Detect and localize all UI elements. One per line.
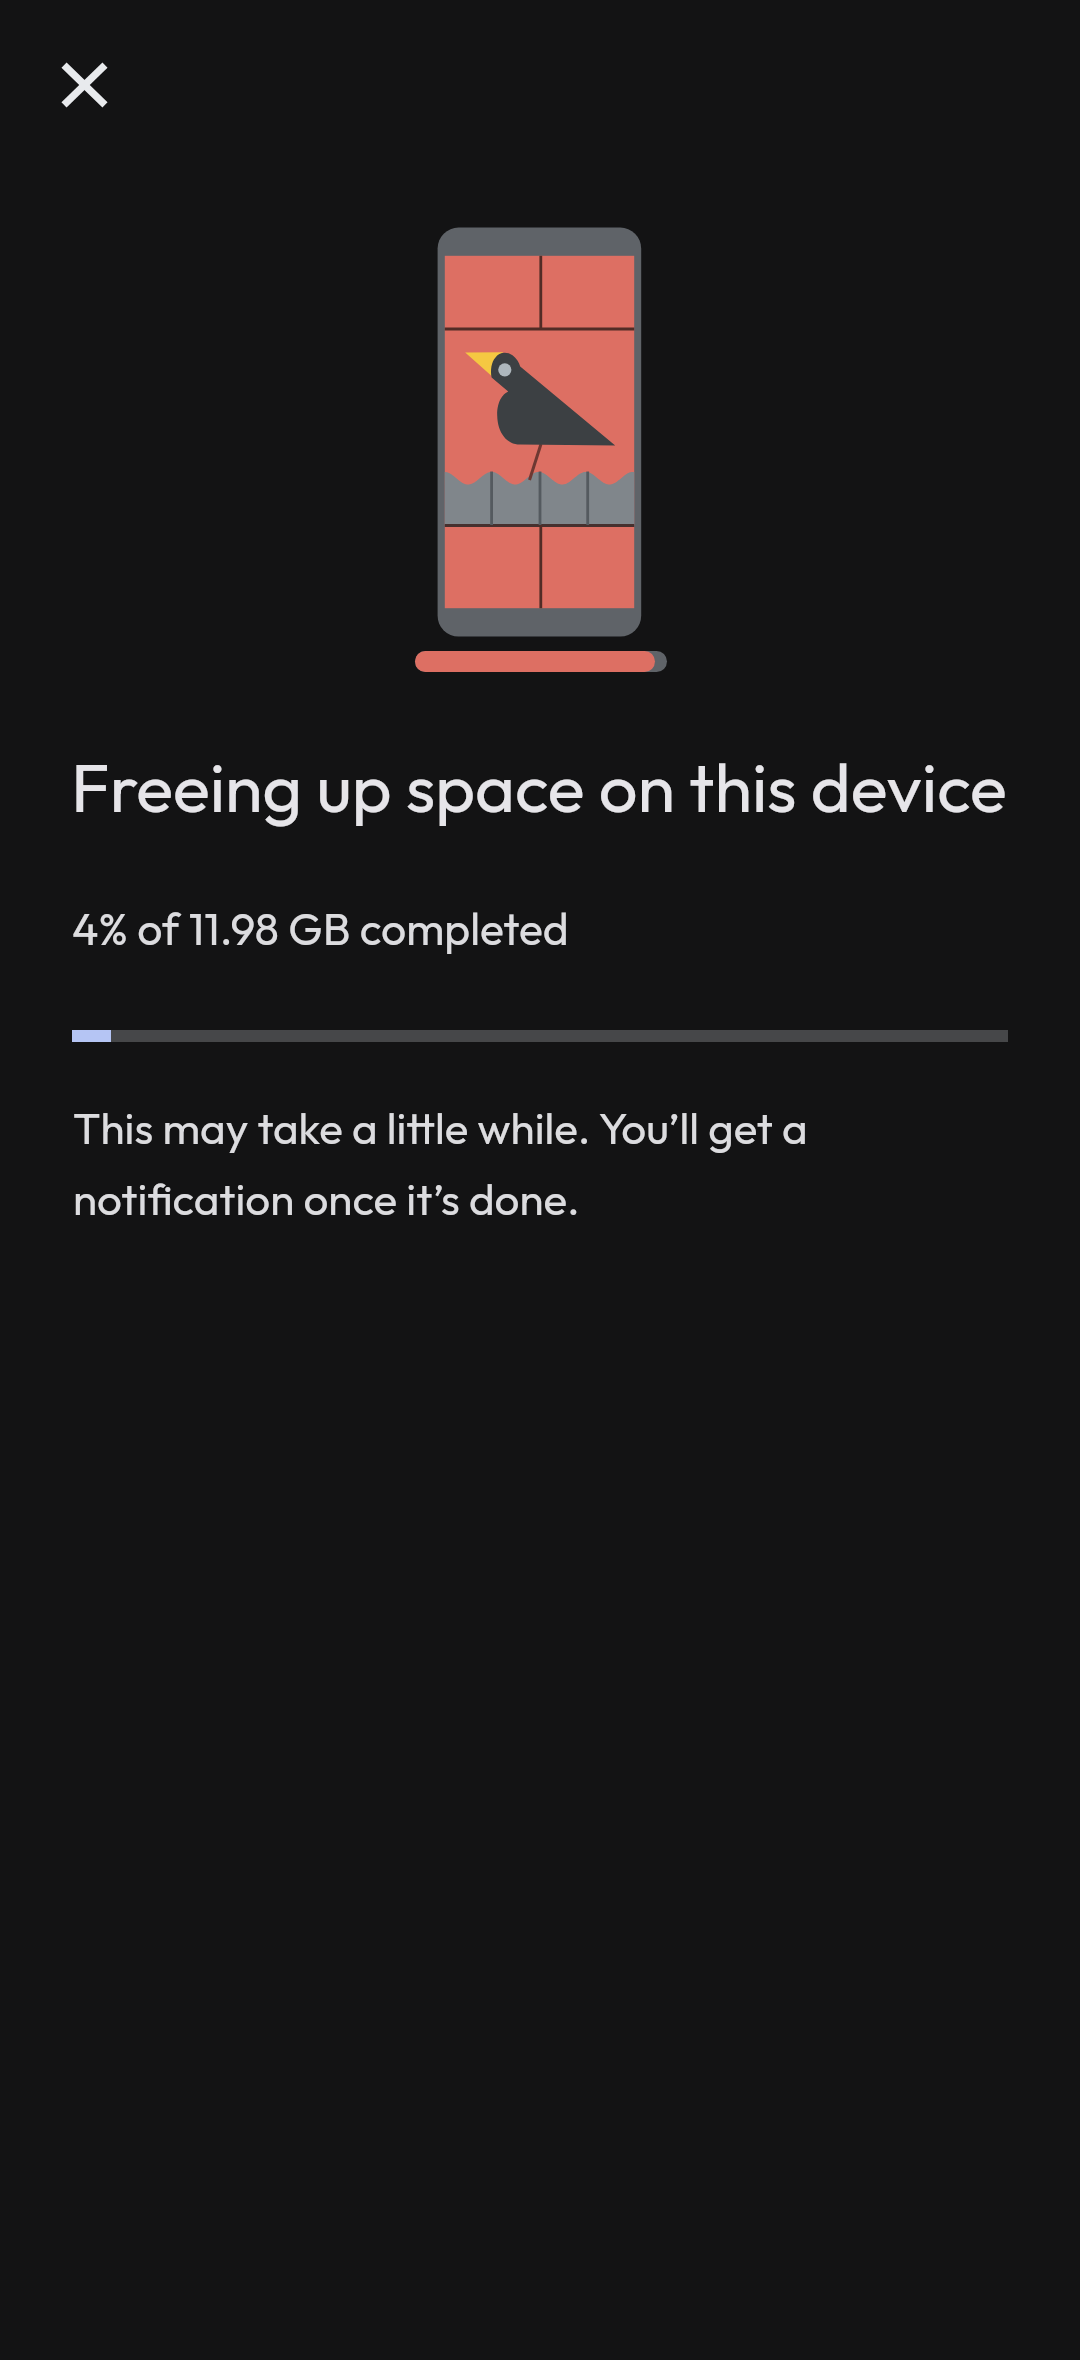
staticText: 4% of 11.98 GB completed <box>72 900 569 956</box>
button[interactable]: Close <box>36 37 132 133</box>
staticText: Freeing up space on this device <box>71 743 1051 829</box>
staticText: This may take a little while. You’ll get… <box>73 1100 868 1227</box>
